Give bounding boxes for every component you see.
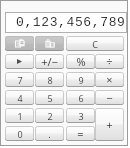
button[interactable]: . bbox=[35, 126, 64, 141]
staticText: 1 bbox=[17, 110, 23, 122]
button[interactable]: 7 bbox=[5, 72, 34, 87]
button[interactable]: 9 bbox=[66, 72, 95, 87]
button[interactable]: Backspace bbox=[5, 54, 34, 69]
button[interactable]: Copy bbox=[5, 36, 34, 51]
button[interactable]: 8 bbox=[35, 72, 64, 87]
staticText: 5 bbox=[47, 92, 53, 104]
button[interactable]: 0 bbox=[5, 126, 34, 141]
staticText: 7 bbox=[17, 74, 23, 86]
staticText: C bbox=[92, 38, 98, 50]
staticText: = bbox=[77, 126, 84, 141]
button[interactable]: 2 bbox=[35, 108, 64, 123]
staticText: ÷ bbox=[106, 54, 113, 69]
button[interactable]: % bbox=[66, 54, 95, 69]
button[interactable]: = bbox=[66, 126, 95, 141]
staticText: − bbox=[106, 90, 113, 105]
button[interactable]: 5 bbox=[35, 90, 64, 105]
button[interactable]: 3 bbox=[66, 108, 95, 123]
staticText: 0 bbox=[17, 128, 23, 140]
button[interactable]: 1 bbox=[5, 108, 34, 123]
button[interactable]: +/− bbox=[35, 54, 64, 69]
staticText: 4 bbox=[17, 92, 23, 104]
button[interactable]: × bbox=[95, 72, 124, 87]
button[interactable]: Paste bbox=[35, 36, 64, 51]
button[interactable]: C bbox=[66, 36, 124, 51]
staticText: 0,123,456,789 bbox=[16, 15, 126, 30]
staticText: . bbox=[48, 128, 51, 140]
staticText: × bbox=[106, 72, 113, 87]
button[interactable]: 6 bbox=[66, 90, 95, 105]
staticText: % bbox=[76, 54, 86, 69]
button[interactable]: ÷ bbox=[95, 54, 124, 69]
staticText: 2 bbox=[47, 110, 53, 122]
staticText: + bbox=[106, 117, 113, 132]
button[interactable]: + bbox=[95, 108, 124, 141]
button[interactable]: 4 bbox=[5, 90, 34, 105]
staticText: 8 bbox=[47, 74, 53, 86]
staticText: 9 bbox=[78, 74, 84, 86]
staticText: +/− bbox=[41, 54, 58, 69]
staticText: 3 bbox=[78, 110, 84, 122]
button[interactable]: − bbox=[95, 90, 124, 105]
staticText: 6 bbox=[78, 92, 84, 104]
